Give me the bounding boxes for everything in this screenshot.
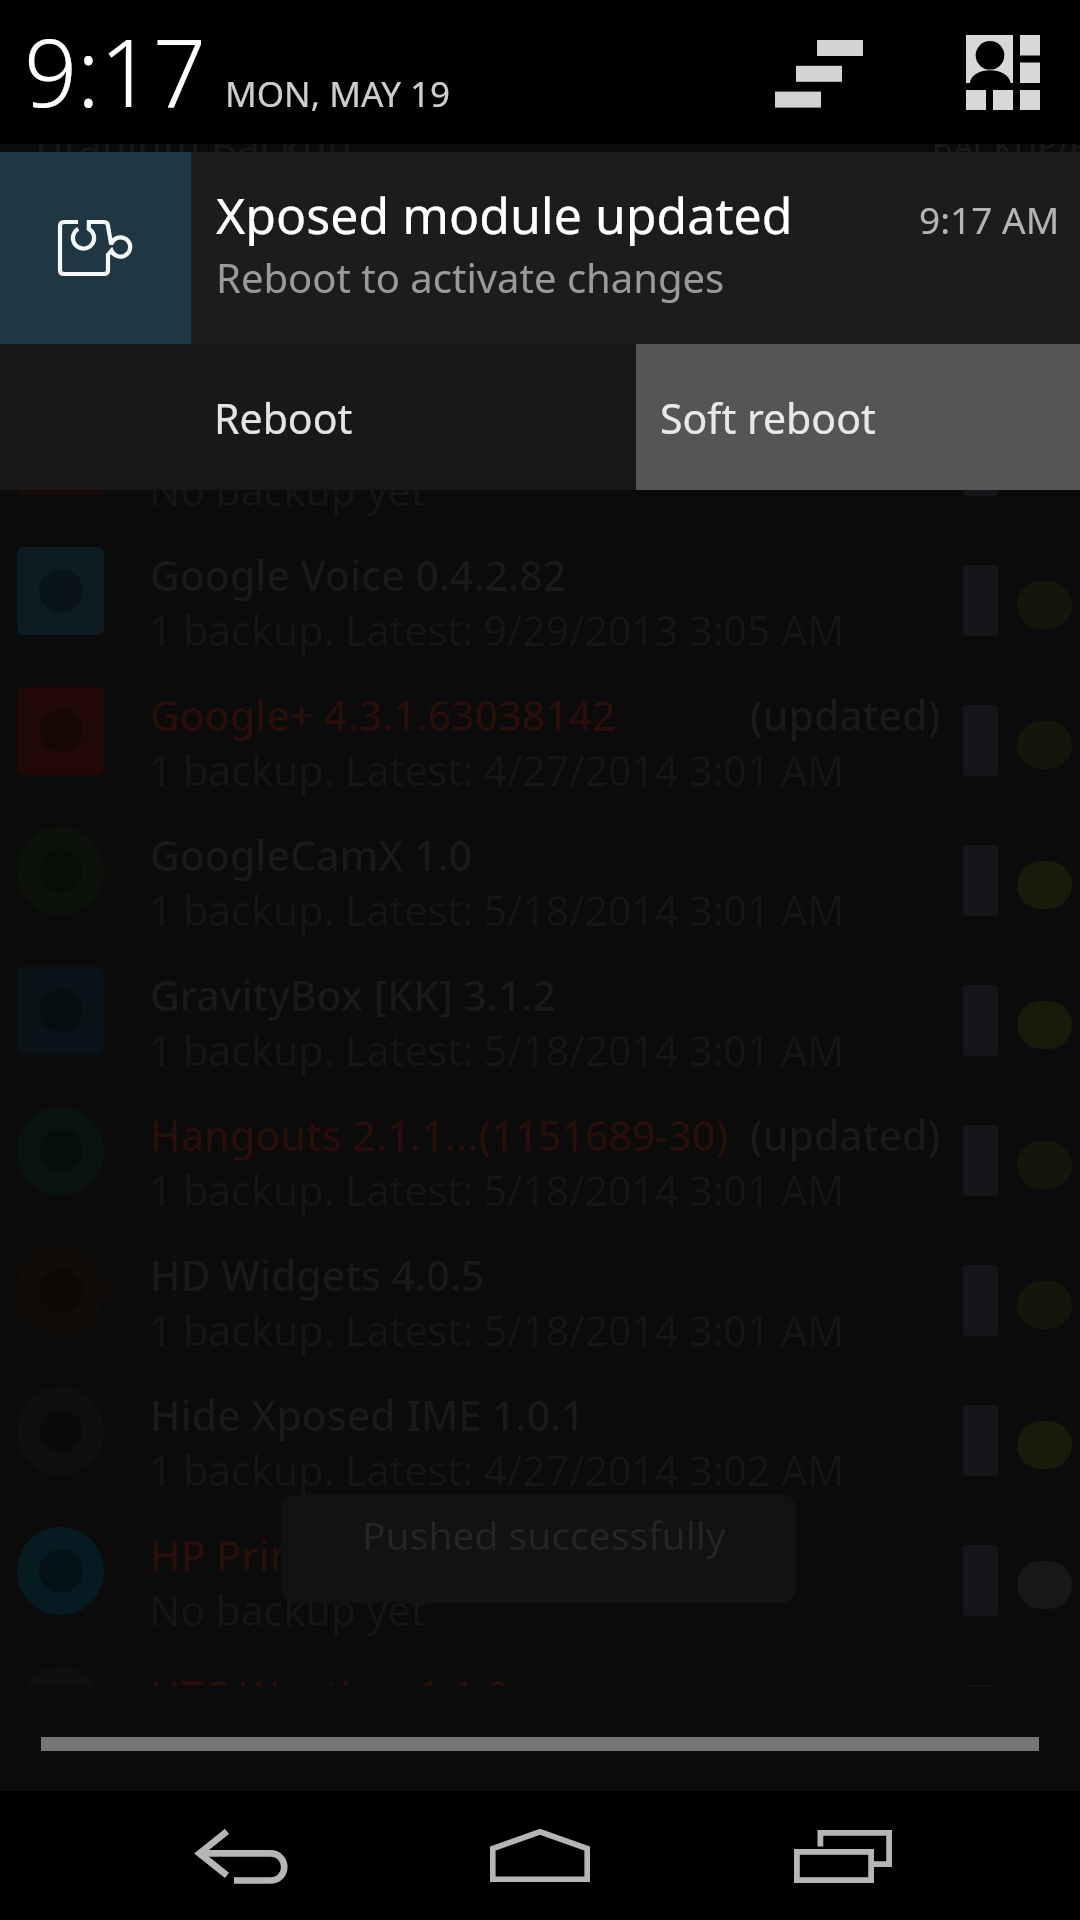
button[interactable]: Reboot — [0, 344, 636, 490]
button[interactable]: Close notification shade — [0, 1686, 1080, 1791]
button[interactable]: Hide Xposed IME 1.0.1 — [0, 1365, 1080, 1505]
staticText: GravityBox [KK] 3.1.2 — [150, 967, 556, 1023]
staticText: GoogleCamX 1.0 — [150, 827, 473, 883]
button[interactable]: Xposed module updated — [0, 152, 1080, 344]
button[interactable]: Google Voice 0.4.2.82 — [0, 525, 1080, 665]
staticText: Google+ 4.3.1.63038142 — [150, 687, 616, 743]
button[interactable]: Hangouts 2.1.1...(1151689-30) — [0, 1085, 1080, 1225]
button[interactable]: GoogleCamX 1.0 — [0, 805, 1080, 945]
staticText: BACKUP/RESTORE — [932, 124, 1080, 168]
staticText: 9:17 AM — [919, 194, 1060, 244]
button[interactable]: Home — [420, 1791, 660, 1920]
staticText: 1 backup. Latest: 5/18/2014 3:01 AM — [149, 882, 845, 938]
staticText: No backup yet — [149, 1582, 426, 1638]
staticText: Titanium Backup — [30, 118, 352, 172]
staticText: 1 backup. Latest: 5/18/2014 — [149, 1722, 679, 1778]
staticText: 1 backup. Latest: 5/18/2014 3:01 AM — [149, 1022, 845, 1078]
button[interactable]: Gmail 4.8 — [0, 385, 1080, 525]
staticText: 1 backup. Latest: 5/18/2014 3:01 AM — [149, 1302, 845, 1358]
button[interactable]: GravityBox [KK] 3.1.2 — [0, 945, 1080, 1085]
staticText: (updated) — [750, 1107, 941, 1163]
staticText: Pushed successfully — [362, 1508, 726, 1561]
staticText: 1 backup. Latest: 4/27/2014 3:02 AM — [149, 1442, 845, 1498]
staticText: 1 backup. Latest: 9/29/2013 3:05 AM — [149, 602, 845, 658]
staticText: No backup yet — [149, 462, 426, 518]
staticText: HD Widgets 4.0.5 — [150, 1247, 485, 1303]
staticText: Reboot — [214, 390, 353, 446]
staticText: Reboot to activate changes — [216, 250, 725, 304]
staticText: Soft reboot — [660, 390, 876, 446]
staticText: Hangouts 2.1.1...(1151689-30) — [150, 1107, 729, 1163]
staticText: Xposed module updated — [216, 181, 793, 249]
staticText: HTC Weather 1.1.0 — [150, 1667, 510, 1723]
staticText: Gmail 4.8 — [150, 407, 333, 463]
button[interactable]: Notification settings — [711, 2, 927, 146]
button[interactable]: HP Print — [0, 1505, 1080, 1645]
staticText: Google Voice 0.4.2.82 — [150, 547, 567, 603]
button[interactable]: HTC Weather 1.1.0 — [0, 1645, 1080, 1785]
button[interactable]: Google+ 4.3.1.63038142 — [0, 665, 1080, 805]
staticText: 1 backup. Latest: 5/18/2014 3:01 AM — [149, 1162, 845, 1218]
button[interactable]: Back — [127, 1803, 367, 1920]
staticText: Hide Xposed IME 1.0.1 — [150, 1387, 585, 1443]
staticText: (updated) — [750, 687, 941, 743]
button[interactable]: Recent apps — [723, 1794, 963, 1920]
button[interactable]: Soft reboot — [636, 344, 1080, 490]
button[interactable]: HD Widgets 4.0.5 — [0, 1225, 1080, 1365]
staticText: 1 backup. Latest: 4/27/2014 3:01 AM — [149, 742, 845, 798]
staticText: MON, MAY 19 — [225, 70, 451, 118]
staticText: HP Print — [150, 1527, 312, 1583]
staticText: 9:17 — [24, 8, 207, 135]
button[interactable]: Quick settings — [927, 0, 1079, 144]
